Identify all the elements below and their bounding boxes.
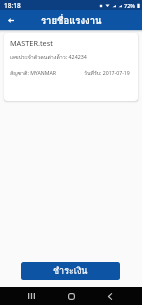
staticText: 18:18 (4, 1, 21, 10)
button[interactable]: ชำระเงิน (21, 262, 120, 280)
button[interactable]: MASTER.test (4, 33, 138, 101)
staticText: 72% (124, 2, 135, 9)
staticText: เลขประจำตัวคนต่างด้าว: 424234 (10, 53, 87, 61)
button[interactable]: Home (63, 288, 79, 304)
staticText: ชำระเงิน (53, 264, 88, 278)
staticText: MASTER.test (10, 38, 53, 48)
button[interactable]: Back (102, 288, 118, 304)
button[interactable]: Recents (23, 288, 39, 304)
staticText: สัญชาติ: MYANMAR (10, 69, 56, 77)
button[interactable]: Back (3, 12, 19, 28)
staticText: รายชื่อแรงงาน (41, 13, 102, 28)
staticText: วันที่รับ: 2017-07-19 (84, 69, 130, 77)
